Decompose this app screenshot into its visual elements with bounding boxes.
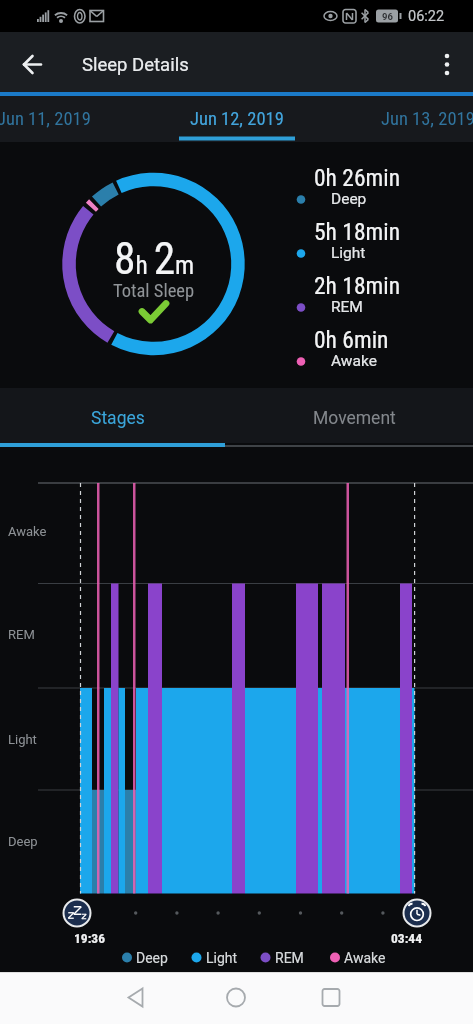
staticText: Light [206,950,238,966]
staticText: 5h 18min [314,218,401,246]
button[interactable]: Jun 12, 2019 [77,98,397,139]
staticText: Jun 12, 2019 [190,108,284,130]
staticText: Deep [136,950,168,966]
staticText: REM [8,627,35,642]
staticText: Awake [8,524,47,539]
staticText: 96 [382,11,393,22]
button[interactable] [106,978,166,1018]
button[interactable]: Movement [236,390,473,447]
staticText: Total Sleep [113,280,195,302]
button[interactable] [427,44,467,84]
button[interactable]: Stages [0,390,236,447]
staticText: Awake [331,352,377,370]
staticText: 06:22 [408,8,445,25]
staticText: Jun 11, 2019 [0,108,91,130]
staticText: Deep [331,190,367,208]
staticText: 0h 6min [314,326,389,354]
staticText: Light [331,244,366,262]
button[interactable] [58,894,96,932]
staticText: 0h 26min [314,164,401,192]
staticText: Light [8,732,37,747]
staticText: REM [275,950,304,966]
staticText: Awake [344,950,386,966]
staticText: REM [331,298,363,316]
button[interactable]: Jun 11, 2019 [0,98,317,139]
staticText: Sleep Details [82,54,189,76]
button[interactable] [301,978,361,1018]
button[interactable] [206,978,266,1018]
staticText: Stages [91,408,145,429]
staticText: 03:44 [391,930,423,946]
staticText: Movement [313,408,396,429]
staticText: 2h 18min [314,272,401,300]
staticText: Deep [8,834,38,849]
staticText: Jun 13, 2019 [381,108,473,130]
staticText: 19:36 [74,930,106,946]
button[interactable] [12,44,52,84]
staticText: 8h 2m [114,234,195,280]
button[interactable]: Jun 13, 2019 [155,98,473,139]
button[interactable] [398,894,436,932]
